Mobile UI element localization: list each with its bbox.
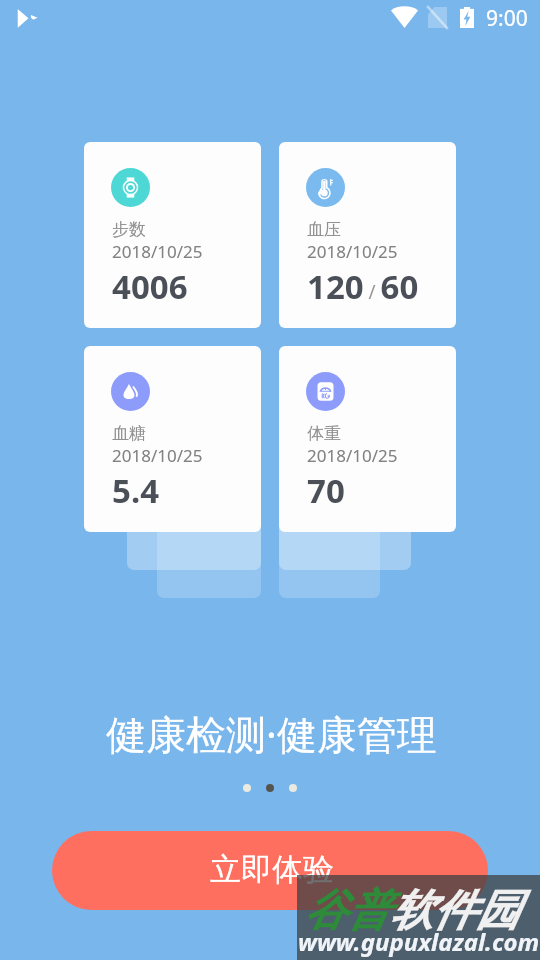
button[interactable]: 体重 xyxy=(279,346,456,532)
button[interactable]: 步数 xyxy=(84,142,261,328)
staticText: 立即体验 xyxy=(210,850,334,889)
other: Play Store xyxy=(16,7,38,29)
staticText: 血糖 xyxy=(112,423,146,444)
staticText: 5.4 xyxy=(112,468,160,513)
staticText: 70 xyxy=(307,468,345,513)
staticText: www.gupuxlazal.com xyxy=(298,925,540,958)
button[interactable]: Page 3 xyxy=(289,784,297,792)
button[interactable]: 立即体验 xyxy=(52,831,488,910)
button[interactable]: Page 2 xyxy=(266,784,274,792)
staticText: 体重 xyxy=(307,423,341,444)
button[interactable]: 血糖 xyxy=(84,346,261,532)
staticText: 120 / 60 xyxy=(307,264,419,309)
button[interactable]: Page 1 xyxy=(243,784,251,792)
staticText: 2018/10/25 xyxy=(307,240,398,263)
staticText: 2018/10/25 xyxy=(307,444,398,467)
staticText: 4006 xyxy=(112,264,188,309)
staticText: 步数 xyxy=(112,219,146,240)
staticText: 2018/10/25 xyxy=(112,240,203,263)
staticText: 9:00 xyxy=(486,4,528,33)
staticText: 健康检测·健康管理 xyxy=(106,706,437,761)
other: No SIM card xyxy=(428,7,447,28)
staticText: 谷普软件园 xyxy=(304,884,519,938)
staticText: 2018/10/25 xyxy=(112,444,203,467)
other: Wi-Fi xyxy=(391,8,418,28)
button[interactable]: 血压 xyxy=(279,142,456,328)
other: Battery charging xyxy=(460,7,474,28)
staticText: 血压 xyxy=(307,219,341,240)
